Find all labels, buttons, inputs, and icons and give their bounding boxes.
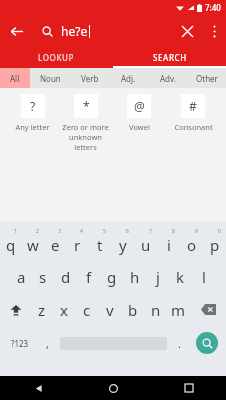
- staticText: h: [130, 267, 140, 287]
- button[interactable]: Other: [187, 68, 226, 88]
- button[interactable]: v: [98, 293, 121, 326]
- staticText: ?: [30, 98, 36, 114]
- staticText: w: [27, 235, 39, 255]
- staticText: 2: [36, 228, 39, 235]
- button[interactable]: Search: [190, 326, 224, 360]
- button[interactable]: Shift: [0, 293, 31, 326]
- staticText: 9: [195, 228, 198, 235]
- staticText: j: [156, 267, 160, 287]
- button[interactable]: Home: [76, 376, 151, 400]
- staticText: b: [128, 300, 138, 320]
- staticText: Any letter: [15, 122, 50, 132]
- button[interactable]: Clear: [172, 16, 202, 46]
- staticText: l: [202, 267, 206, 287]
- button[interactable]: Adj.: [109, 68, 148, 88]
- button[interactable]: ,: [37, 326, 58, 360]
- staticText: he?e: [61, 23, 88, 39]
- staticText: ?123: [11, 338, 29, 349]
- button[interactable]: SEARCH: [113, 47, 226, 68]
- staticText: v: [106, 300, 114, 320]
- button[interactable]: Adv.: [148, 68, 187, 88]
- button[interactable]: Recents: [151, 376, 226, 400]
- button[interactable]: Back: [0, 15, 32, 47]
- button[interactable]: *: [60, 94, 111, 152]
- staticText: t: [97, 235, 103, 255]
- staticText: 0: [218, 228, 221, 235]
- staticText: ,: [46, 336, 49, 351]
- button[interactable]: 0: [203, 227, 226, 260]
- staticText: c: [83, 300, 91, 320]
- button[interactable]: s: [32, 260, 54, 293]
- button[interactable]: 2: [22, 227, 44, 260]
- staticText: All: [10, 73, 20, 84]
- staticText: .: [178, 336, 181, 351]
- button[interactable]: LOOKUP: [0, 47, 113, 68]
- button[interactable]: ?: [7, 94, 58, 132]
- button[interactable]: Verb: [70, 68, 109, 88]
- staticText: y: [119, 235, 127, 255]
- staticText: 7:40: [205, 2, 221, 13]
- staticText: Consonant: [174, 122, 213, 132]
- staticText: g: [107, 267, 117, 287]
- button[interactable]: 3: [44, 227, 66, 260]
- staticText: LOOKUP: [38, 52, 75, 63]
- staticText: d: [61, 267, 71, 287]
- staticText: i: [167, 235, 171, 255]
- staticText: Adj.: [121, 73, 136, 84]
- button[interactable]: #: [167, 94, 219, 132]
- staticText: Vowel: [129, 122, 150, 132]
- staticText: #: [189, 98, 197, 114]
- button[interactable]: f: [77, 260, 100, 293]
- button[interactable]: j: [146, 260, 169, 293]
- staticText: m: [171, 300, 186, 320]
- button[interactable]: n: [144, 293, 167, 326]
- button[interactable]: Backspace: [190, 293, 226, 326]
- staticText: 5: [103, 228, 106, 235]
- staticText: @: [134, 98, 145, 114]
- staticText: Adv.: [160, 73, 176, 84]
- staticText: SEARCH: [153, 52, 187, 63]
- button[interactable]: z: [31, 293, 53, 326]
- staticText: f: [86, 267, 92, 287]
- button[interactable]: .: [169, 326, 190, 360]
- button[interactable]: a: [10, 260, 32, 293]
- button[interactable]: c: [75, 293, 98, 326]
- button[interactable]: 9: [180, 227, 203, 260]
- button[interactable]: All: [0, 68, 30, 88]
- button[interactable]: g: [100, 260, 123, 293]
- staticText: Zero or more unknown letters: [60, 122, 111, 152]
- button[interactable]: 7: [134, 227, 157, 260]
- staticText: a: [17, 267, 26, 287]
- button[interactable]: 6: [111, 227, 134, 260]
- button[interactable]: Noun: [30, 68, 70, 88]
- button[interactable]: x: [53, 293, 75, 326]
- button[interactable]: b: [121, 293, 144, 326]
- staticText: 6: [126, 228, 129, 235]
- staticText: s: [39, 267, 47, 287]
- staticText: Verb: [81, 73, 99, 84]
- staticText: x: [60, 300, 68, 320]
- staticText: z: [38, 300, 46, 320]
- button[interactable]: k: [169, 260, 192, 293]
- button[interactable]: Back: [0, 376, 76, 400]
- button[interactable]: 8: [157, 227, 180, 260]
- staticText: 4: [80, 228, 83, 235]
- button[interactable]: @: [113, 94, 165, 132]
- staticText: Noun: [40, 73, 61, 84]
- button[interactable]: 5: [88, 227, 111, 260]
- staticText: u: [141, 235, 151, 255]
- button[interactable]: 4: [66, 227, 88, 260]
- staticText: n: [151, 300, 161, 320]
- staticText: k: [176, 267, 185, 287]
- staticText: 7: [149, 228, 152, 235]
- button[interactable]: 1: [0, 227, 22, 260]
- button[interactable]: h: [123, 260, 146, 293]
- button[interactable]: l: [192, 260, 215, 293]
- staticText: q: [6, 235, 16, 255]
- staticText: o: [187, 235, 197, 255]
- button[interactable]: More options: [202, 19, 226, 43]
- button[interactable]: d: [54, 260, 77, 293]
- button[interactable]: m: [167, 293, 190, 326]
- button[interactable]: ?123: [2, 326, 37, 360]
